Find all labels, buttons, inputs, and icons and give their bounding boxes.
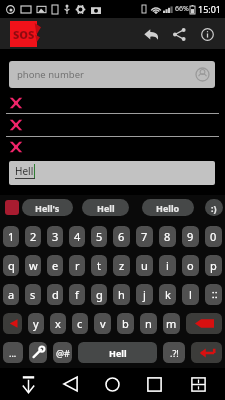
staticText: 5	[96, 229, 103, 244]
button[interactable]: 7	[136, 226, 153, 247]
button[interactable]: Recents	[140, 370, 168, 398]
staticText: g	[96, 287, 103, 302]
staticText: 66%	[175, 4, 189, 14]
button[interactable]: 6	[113, 226, 130, 247]
staticText: c	[77, 316, 83, 331]
button[interactable]: 0	[205, 226, 222, 247]
button[interactable]: Back	[56, 370, 84, 398]
button[interactable]: Hide keyboard	[14, 370, 42, 398]
button[interactable]: w	[25, 255, 41, 276]
staticText: e	[52, 258, 59, 273]
button[interactable]: z	[113, 255, 130, 276]
button[interactable]: More	[3, 342, 23, 363]
staticText: w	[29, 258, 38, 273]
button[interactable]: k	[159, 284, 176, 305]
staticText: y	[33, 316, 39, 331]
button[interactable]: m	[163, 313, 180, 334]
staticText: 15:01	[198, 3, 222, 15]
button[interactable]: Settings	[29, 342, 47, 363]
button[interactable]: Info	[194, 21, 220, 47]
staticText: s	[30, 287, 36, 302]
button[interactable]: :)	[205, 199, 223, 216]
button[interactable]: a	[3, 284, 19, 305]
button[interactable]: t	[91, 255, 107, 276]
button[interactable]: Hello	[142, 199, 194, 216]
button[interactable]: l	[182, 284, 199, 305]
button[interactable]: 3	[47, 226, 63, 247]
staticText: j	[143, 287, 146, 302]
staticText: 4	[74, 229, 81, 244]
staticText: q	[8, 258, 15, 273]
button[interactable]: Split screen	[184, 370, 212, 398]
button[interactable]: n	[140, 313, 157, 334]
button[interactable]: c	[72, 313, 88, 334]
staticText: Hell	[15, 164, 34, 178]
staticText: 7	[141, 229, 148, 244]
button[interactable]: Undo	[138, 21, 164, 47]
staticText: Hell's	[35, 202, 60, 214]
staticText: l	[189, 287, 192, 302]
staticText: d	[52, 287, 59, 302]
button[interactable]: SOS	[10, 21, 37, 47]
button[interactable]: s	[25, 284, 41, 305]
button[interactable]: Voice input	[5, 200, 19, 215]
button[interactable]: r	[69, 255, 85, 276]
staticText: 8	[164, 229, 171, 244]
button[interactable]: u	[136, 255, 153, 276]
button[interactable]: g	[91, 284, 107, 305]
button[interactable]: h	[113, 284, 130, 305]
button[interactable]: Symbols	[53, 342, 72, 363]
staticText: h	[118, 287, 125, 302]
button[interactable]: y	[28, 313, 44, 334]
button[interactable]: f	[69, 284, 85, 305]
button[interactable]: Hell	[9, 161, 215, 185]
button[interactable]: x	[50, 313, 66, 334]
button[interactable]: j	[136, 284, 153, 305]
button[interactable]: Home	[98, 370, 126, 398]
staticText: o	[187, 258, 194, 273]
button[interactable]: 4	[69, 226, 85, 247]
button[interactable]: 1	[3, 226, 19, 247]
button[interactable]: v	[94, 313, 111, 334]
staticText: Hell	[109, 347, 127, 359]
staticText: 0	[210, 229, 217, 244]
button[interactable]: 8	[159, 226, 176, 247]
staticText: u	[141, 258, 148, 273]
button[interactable]: b	[117, 313, 134, 334]
button[interactable]: Send	[191, 342, 222, 363]
staticText: v	[100, 316, 106, 331]
staticText: b	[122, 316, 129, 331]
button[interactable]: Punctuation	[163, 342, 185, 363]
button[interactable]: 2	[25, 226, 41, 247]
staticText: i	[166, 258, 169, 273]
staticText: x	[55, 316, 61, 331]
staticText: @#	[56, 347, 70, 359]
staticText: 9	[187, 229, 194, 244]
button[interactable]: 9	[182, 226, 199, 247]
button[interactable]: p	[205, 255, 222, 276]
button[interactable]: Colon semicolon	[205, 284, 222, 305]
button[interactable]: i	[159, 255, 176, 276]
staticText: t	[97, 258, 101, 273]
staticText: phone number	[17, 68, 84, 81]
staticText: p	[210, 258, 217, 273]
button[interactable]: e	[47, 255, 63, 276]
staticText: Hell	[97, 202, 115, 214]
button[interactable]: Hell	[78, 342, 157, 363]
button[interactable]: Backspace	[186, 313, 222, 334]
staticText: 2	[30, 229, 37, 244]
staticText: 6	[118, 229, 125, 244]
button[interactable]: Shift	[3, 313, 22, 334]
staticText: f	[75, 287, 79, 302]
button[interactable]: Share	[166, 21, 192, 47]
button[interactable]: Hell	[82, 199, 129, 216]
staticText: ...	[9, 347, 17, 359]
button[interactable]: o	[182, 255, 199, 276]
button[interactable]: 5	[91, 226, 107, 247]
button[interactable]: Hell's	[22, 199, 73, 216]
button[interactable]: d	[47, 284, 63, 305]
button[interactable]: phone number	[9, 61, 215, 88]
staticText: :)	[211, 202, 217, 214]
staticText: 1	[8, 229, 15, 244]
button[interactable]: q	[3, 255, 19, 276]
